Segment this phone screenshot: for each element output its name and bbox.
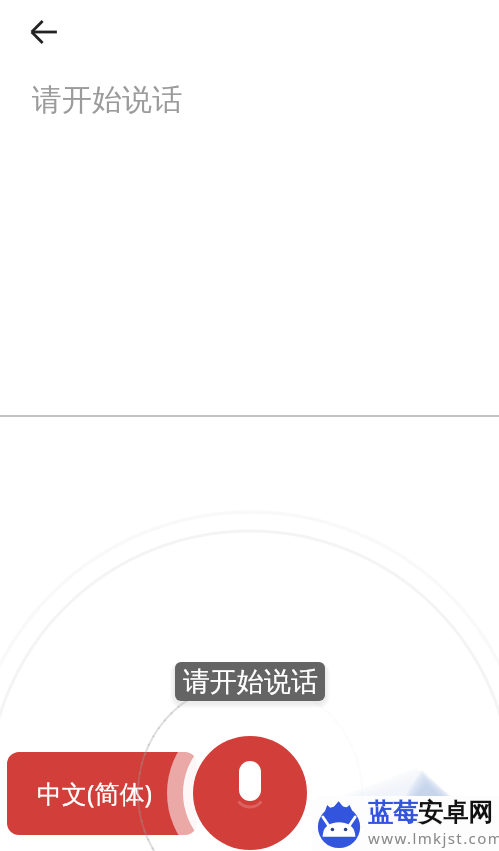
staticText: 请开始说话	[32, 81, 182, 119]
staticText: 安卓网	[418, 797, 493, 828]
staticText: 请开始说话	[183, 665, 318, 699]
staticText: 蓝莓	[368, 797, 418, 828]
button[interactable]: 中文(简体)	[7, 752, 197, 835]
staticText: 中文(简体)	[37, 776, 153, 810]
staticText: www.lmkjst.com	[368, 828, 499, 848]
button[interactable]: Back	[22, 10, 66, 54]
button[interactable]: Start voice input	[193, 736, 307, 850]
